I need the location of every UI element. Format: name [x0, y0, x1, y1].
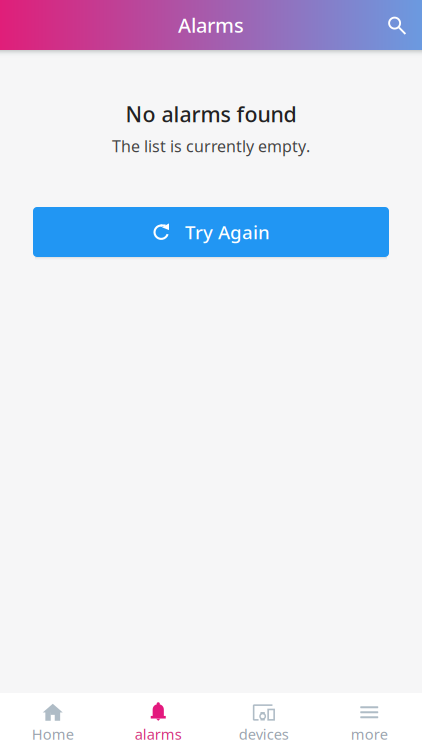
button[interactable]: Home — [0, 693, 105, 750]
button[interactable]: Search — [372, 0, 422, 50]
button[interactable]: more — [316, 693, 422, 750]
staticText: The list is currently empty. — [112, 135, 310, 157]
staticText: Try Again — [185, 220, 270, 244]
staticText: No alarms found — [125, 100, 296, 128]
button[interactable]: alarms — [105, 693, 211, 750]
button[interactable]: Try Again — [33, 207, 389, 257]
staticText: more — [351, 724, 388, 744]
staticText: alarms — [135, 724, 182, 744]
button[interactable]: devices — [211, 693, 316, 750]
staticText: Home — [32, 724, 74, 744]
staticText: Alarms — [178, 12, 244, 38]
staticText: devices — [239, 724, 289, 744]
